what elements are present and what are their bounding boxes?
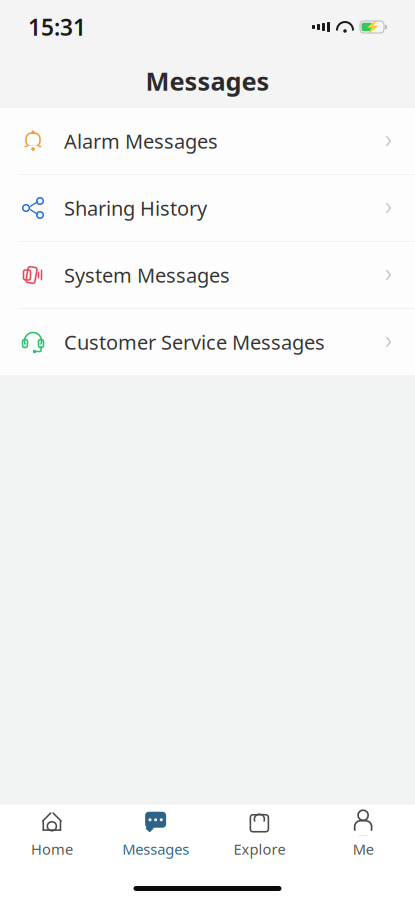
staticText: Messages	[122, 839, 189, 859]
staticText: Messages	[145, 64, 269, 98]
button[interactable]: Explore	[207, 804, 311, 862]
button[interactable]: Alarm Messages	[0, 108, 415, 174]
staticText: System Messages	[64, 262, 230, 288]
button[interactable]: Customer Service Messages	[0, 309, 415, 375]
staticText: Me	[353, 839, 374, 859]
staticText: Sharing History	[64, 195, 207, 221]
staticText: Explore	[233, 839, 285, 859]
button[interactable]: Messages	[104, 804, 208, 862]
staticText: Home	[31, 839, 73, 859]
staticText: ⚡	[364, 20, 379, 34]
staticText: Alarm Messages	[64, 128, 218, 154]
button[interactable]: Me	[311, 804, 415, 862]
button[interactable]: Sharing History	[0, 175, 415, 241]
staticText: Customer Service Messages	[64, 329, 325, 355]
button[interactable]: Home	[0, 804, 104, 862]
button[interactable]: System Messages	[0, 242, 415, 308]
staticText: 15:31	[28, 12, 86, 42]
